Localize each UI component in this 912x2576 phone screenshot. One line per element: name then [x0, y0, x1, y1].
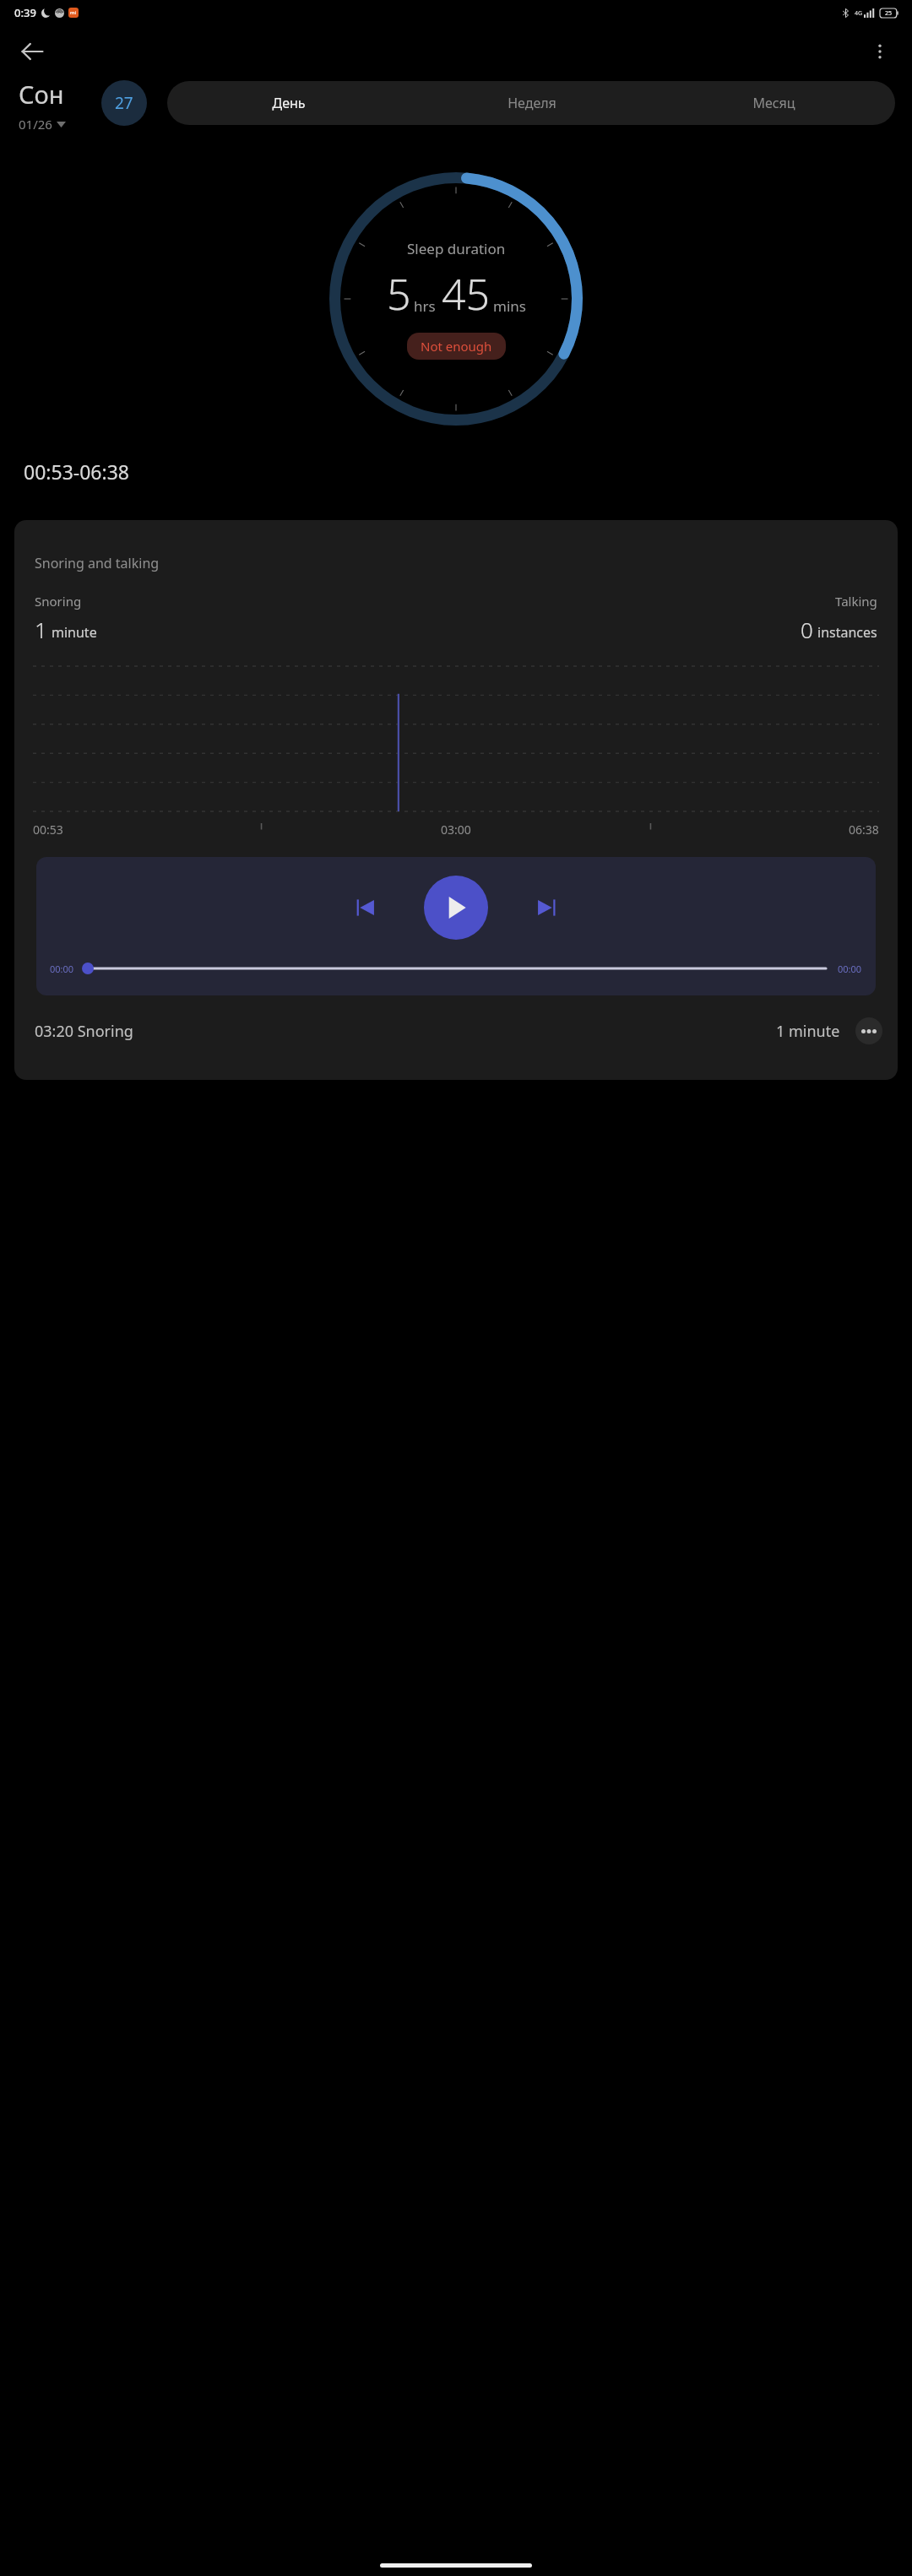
- staticText: Сон: [19, 78, 64, 111]
- staticText: 25: [885, 9, 893, 18]
- button[interactable]: 03:20 Snoring: [14, 1017, 898, 1044]
- button[interactable]: 01/26: [19, 116, 66, 133]
- staticText: 5: [387, 265, 411, 323]
- button[interactable]: День: [167, 81, 410, 125]
- button[interactable]: Неделя: [410, 81, 653, 125]
- button[interactable]: More options: [860, 31, 900, 72]
- staticText: 45: [442, 265, 491, 323]
- button[interactable]: Месяц: [653, 81, 895, 125]
- staticText: 27: [115, 92, 133, 114]
- button[interactable]: 27: [101, 80, 147, 126]
- staticText: 01/26: [19, 116, 52, 133]
- staticText: 0:39: [14, 5, 36, 20]
- staticText: 00:00: [50, 963, 74, 975]
- staticText: 4G: [855, 9, 863, 18]
- staticText: mins: [493, 296, 526, 316]
- staticText: hrs: [414, 296, 436, 316]
- staticText: 0: [801, 615, 813, 644]
- staticText: Месяц: [752, 94, 795, 112]
- button[interactable]: Not enough: [407, 333, 506, 360]
- staticText: instances: [817, 623, 877, 642]
- staticText: День: [272, 94, 306, 112]
- button[interactable]: Play: [424, 876, 488, 940]
- staticText: minute: [52, 623, 97, 642]
- staticText: 1 minute: [776, 1021, 840, 1042]
- button[interactable]: [83, 962, 829, 975]
- staticText: 06:38: [849, 822, 879, 838]
- staticText: Not enough: [421, 338, 492, 355]
- button[interactable]: Back: [12, 31, 52, 72]
- staticText: 00:00: [838, 963, 862, 975]
- button[interactable]: More: [855, 1017, 882, 1044]
- staticText: 03:20 Snoring: [35, 1021, 133, 1042]
- staticText: mi: [70, 9, 77, 16]
- staticText: 00:53-06:38: [24, 458, 129, 485]
- staticText: Talking: [835, 593, 877, 610]
- staticText: 00:53: [33, 822, 63, 838]
- staticText: Snoring and talking: [35, 554, 160, 572]
- button[interactable]: Next: [525, 886, 569, 930]
- staticText: 03:00: [441, 822, 471, 838]
- staticText: Snoring: [35, 593, 82, 610]
- staticText: 1: [35, 615, 47, 644]
- staticText: Неделя: [508, 94, 556, 112]
- staticText: Sleep duration: [407, 239, 506, 258]
- button[interactable]: Previous: [343, 886, 387, 930]
